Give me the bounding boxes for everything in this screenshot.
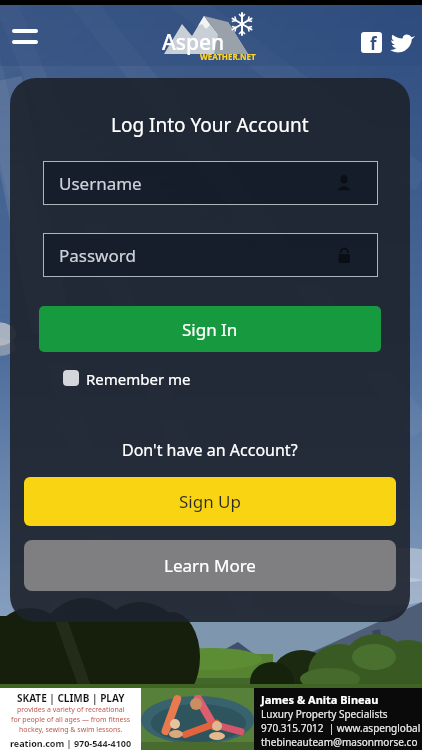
button[interactable] bbox=[390, 33, 416, 53]
button[interactable]: Learn More bbox=[24, 540, 396, 591]
button[interactable]: Sign Up bbox=[24, 477, 396, 526]
staticText: provides a variety of recreational bbox=[17, 705, 125, 715]
staticText: WEATHER.NET bbox=[200, 51, 256, 62]
button[interactable]: Sign In bbox=[39, 306, 381, 352]
staticText: for people of all ages — from fitness bbox=[11, 715, 131, 725]
staticText: 970.315.7012 | www.aspenglobal bbox=[261, 721, 421, 735]
button[interactable] bbox=[12, 27, 39, 45]
staticText: SKATE | CLIMB | PLAY bbox=[17, 691, 125, 705]
staticText: f bbox=[370, 32, 377, 53]
staticText: James & Anita Bineau bbox=[261, 692, 379, 707]
staticText: reation.com | 970-544-4100 bbox=[10, 737, 132, 749]
staticText: Luxury Property Specialists bbox=[261, 707, 388, 721]
button[interactable]: Username bbox=[43, 161, 378, 205]
staticText: Sign Up bbox=[179, 490, 241, 513]
staticText: Learn More bbox=[164, 554, 256, 577]
staticText: Password bbox=[59, 244, 136, 267]
staticText: thebineauteam@masonmorse.co bbox=[261, 735, 418, 749]
staticText: Remember me bbox=[86, 369, 191, 387]
button[interactable]: SKATE | CLIMB | PLAY bbox=[0, 688, 422, 750]
button[interactable]: Password bbox=[43, 233, 378, 277]
staticText: Log Into Your Account bbox=[111, 112, 309, 138]
staticText: Sign In bbox=[182, 318, 238, 341]
button[interactable]: f bbox=[361, 32, 382, 53]
button[interactable]: Aspen bbox=[156, 8, 266, 60]
staticText: hockey, sewing & swim lessons. bbox=[19, 725, 123, 735]
staticText: Aspen bbox=[162, 28, 225, 57]
button[interactable]: Remember me bbox=[39, 369, 381, 387]
staticText: Don't have an Account? bbox=[122, 439, 298, 461]
staticText: Username bbox=[59, 172, 142, 195]
